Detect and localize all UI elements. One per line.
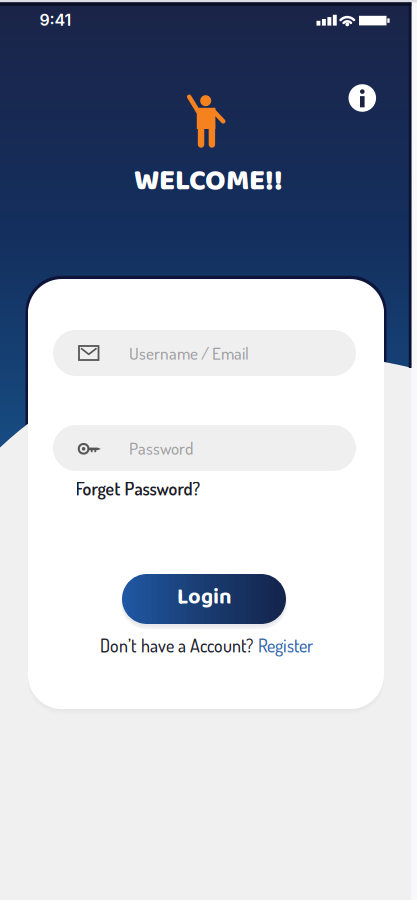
staticText: Don’t have a Account? bbox=[100, 634, 253, 657]
staticText: Password bbox=[129, 437, 193, 459]
button[interactable]: Username / Email bbox=[53, 330, 356, 376]
staticText: 9:41 bbox=[39, 10, 71, 30]
staticText: Forget Password? bbox=[75, 477, 200, 500]
button[interactable]: Forget Password? bbox=[75, 477, 200, 500]
button[interactable]: Password bbox=[53, 425, 356, 471]
staticText: WELCOME!! bbox=[134, 157, 283, 204]
staticText: Register bbox=[258, 634, 313, 657]
button[interactable]: Login bbox=[122, 574, 286, 624]
staticText: Username / Email bbox=[129, 342, 249, 364]
button[interactable]: Register bbox=[258, 634, 313, 657]
button[interactable]: Info bbox=[348, 84, 376, 112]
staticText: Login bbox=[177, 580, 232, 615]
